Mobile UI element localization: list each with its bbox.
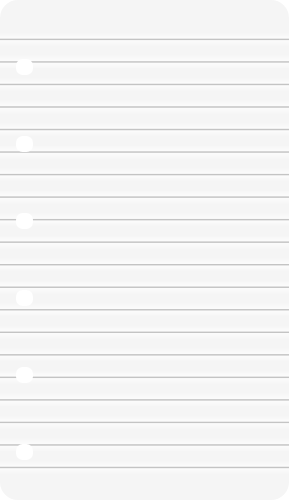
button[interactable]: Entry 6: [0, 413, 289, 490]
button[interactable]: Entry 1: [0, 28, 289, 105]
button[interactable]: Entry 3: [0, 182, 289, 259]
button[interactable]: Entry 5: [0, 336, 289, 413]
button[interactable]: Entry 2: [0, 105, 289, 182]
button[interactable]: Entry 4: [0, 259, 289, 336]
